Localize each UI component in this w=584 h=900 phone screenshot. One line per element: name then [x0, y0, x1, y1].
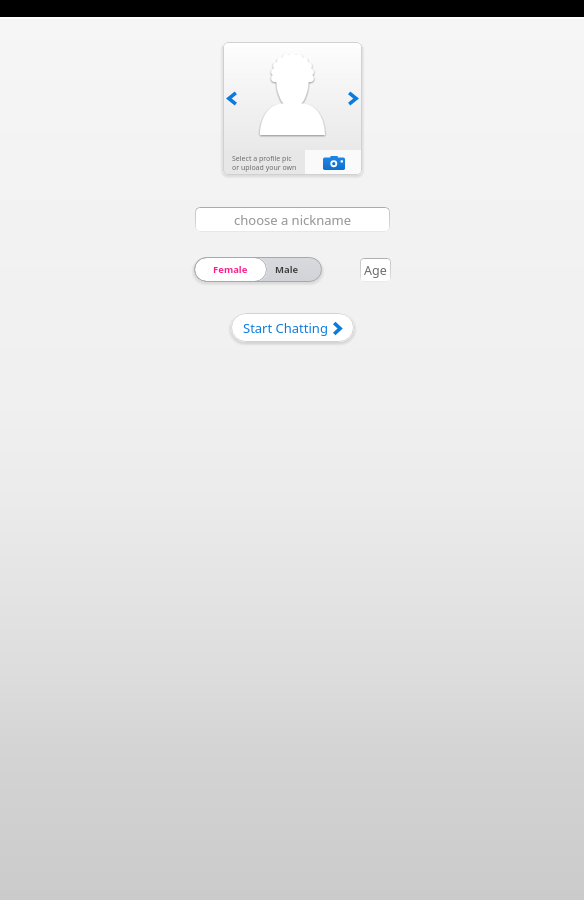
staticText: Male [275, 263, 299, 276]
button[interactable]: Start Chatting [231, 313, 354, 342]
staticText: Start Chatting [243, 319, 328, 337]
staticText: Age [364, 262, 387, 279]
button[interactable]: choose a nickname [195, 207, 390, 232]
button[interactable]: Female [194, 257, 267, 282]
button[interactable]: Take photo [305, 150, 362, 175]
staticText: Female [213, 263, 248, 276]
button[interactable]: Male [194, 257, 322, 282]
button[interactable]: Previous picture [223, 87, 243, 109]
button[interactable]: Next picture [342, 87, 362, 109]
staticText: choose a nickname [234, 211, 352, 229]
button[interactable]: Age [360, 258, 391, 282]
staticText: Select a profile pic or upload your own [232, 154, 297, 172]
button[interactable]: Select a profile pic or upload your own [223, 150, 305, 175]
